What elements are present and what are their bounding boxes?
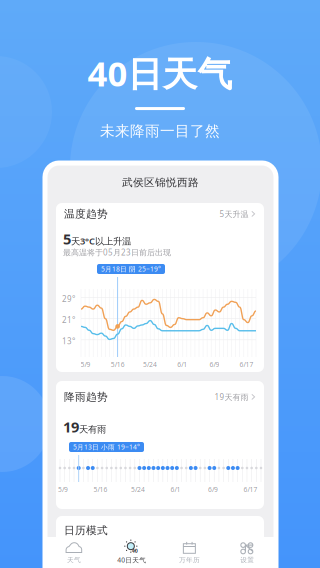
staticText: 天3°C以上升温 [71,235,131,247]
staticText: 29° [62,294,75,304]
staticText: 武侯区锦悦西路 [122,176,199,189]
staticText: 19 [63,417,79,436]
staticText: 21° [62,315,75,325]
staticText: 6/1 [171,485,181,494]
staticText: 5月13日 小雨 19~14° [73,443,140,451]
staticText: 未来降雨一目了然 [100,122,220,140]
staticText: 5/16 [94,485,108,494]
staticText: 天气 [67,556,81,564]
staticText: 天有雨 [79,424,106,435]
staticText: 5/9 [81,360,91,369]
staticText: 降雨趋势 [64,390,108,403]
staticText: 5天升温 [219,209,248,219]
staticText: 5/24 [143,360,157,369]
staticText: 万年历 [179,556,200,564]
button[interactable]: 温度趋势 [56,203,264,225]
button[interactable]: 天气 [45,537,103,568]
staticText: 40日天气 [117,556,146,564]
staticText: 6/17 [244,485,258,494]
staticText: 40日天气 [87,50,232,96]
staticText: 5/16 [111,360,125,369]
staticText: 19天有雨 [214,392,248,402]
staticText: 6/9 [209,360,219,369]
staticText: 温度趋势 [64,207,108,220]
button[interactable]: 降雨趋势 [56,386,264,408]
staticText: 5/24 [131,485,145,494]
staticText: 最高温将于05月23日前后出现 [63,247,171,258]
staticText: 6/9 [208,485,218,494]
staticText: 5 [63,229,71,248]
staticText: 5月18日 阴 25~19° [101,265,161,273]
staticText: 13° [62,336,75,346]
button[interactable]: 40 [103,537,161,568]
staticText: 日历模式 [64,524,108,537]
button[interactable]: 设置 [218,537,276,568]
staticText: 5/9 [58,485,68,494]
staticText: 6/1 [177,360,187,369]
button[interactable]: 万年历 [160,537,218,568]
staticText: 40 [132,547,138,554]
staticText: 6/17 [240,360,254,369]
staticText: 设置 [240,556,254,564]
